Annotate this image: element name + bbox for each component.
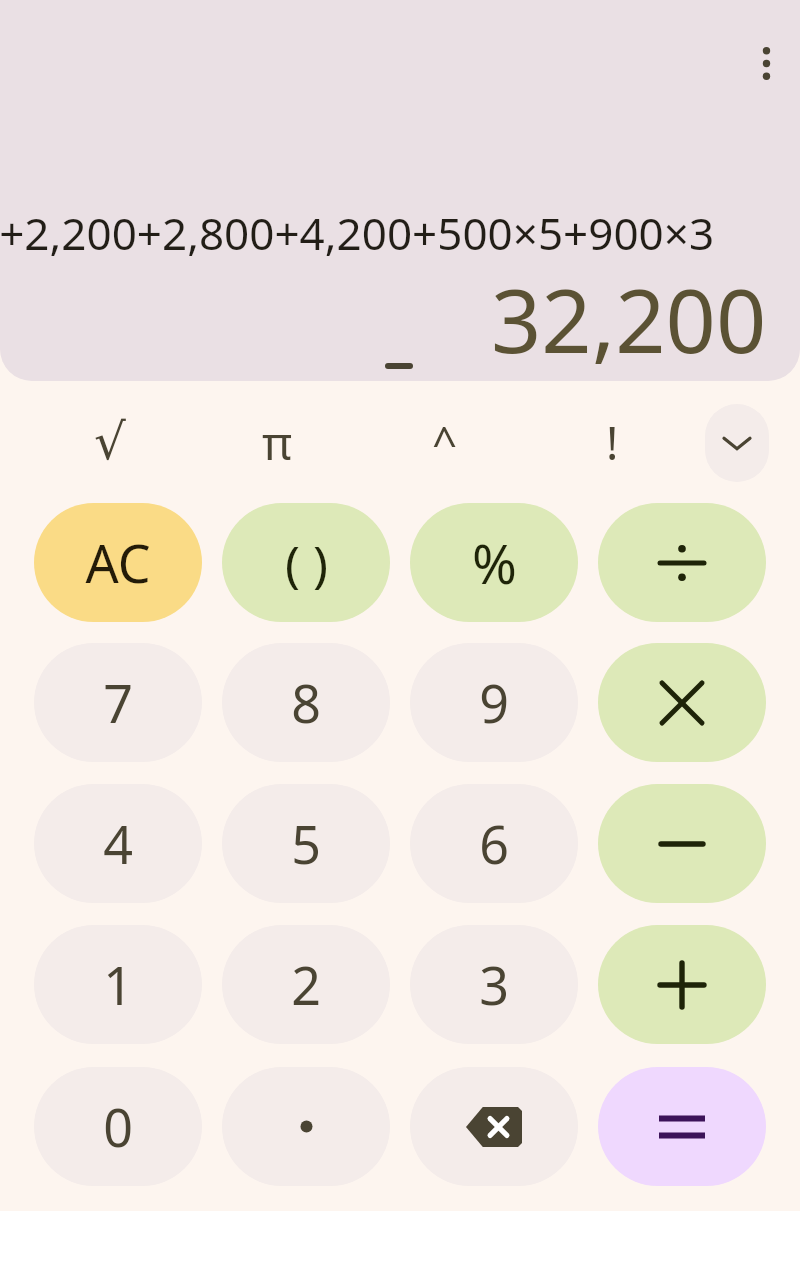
staticText: 4 xyxy=(103,808,133,879)
button[interactable]: 3 xyxy=(410,925,578,1044)
staticText: 32,200 xyxy=(491,259,767,379)
staticText: 7 xyxy=(103,667,133,738)
button[interactable]: 5 xyxy=(222,784,390,903)
staticText: 1 xyxy=(103,949,133,1020)
staticText: 3 xyxy=(479,949,509,1020)
button[interactable]: 7 xyxy=(34,643,202,762)
button[interactable]: 9 xyxy=(410,643,578,762)
button[interactable]: Divide xyxy=(598,503,766,622)
button[interactable]: Multiply xyxy=(598,643,766,762)
button[interactable]: ( ) xyxy=(222,503,390,622)
staticText: % xyxy=(472,526,517,600)
staticText: ( ) xyxy=(285,529,328,597)
button[interactable]: Equals xyxy=(598,1067,766,1186)
button[interactable]: % xyxy=(410,503,578,622)
button[interactable]: Backspace xyxy=(410,1067,578,1186)
staticText: 6 xyxy=(479,808,509,879)
button[interactable]: Expand history xyxy=(370,354,428,378)
button[interactable]: √ xyxy=(70,398,150,486)
button[interactable]: AC xyxy=(34,503,202,622)
staticText: 0+2,200+2,800+4,200+500×5+900×3 xyxy=(0,203,715,263)
button[interactable]: More options xyxy=(734,30,798,96)
button[interactable]: Decimal point xyxy=(222,1067,390,1186)
staticText: ! xyxy=(606,411,619,474)
button[interactable]: 8 xyxy=(222,643,390,762)
button[interactable]: More functions xyxy=(705,404,769,482)
button[interactable]: Plus xyxy=(598,925,766,1044)
button[interactable]: ^ xyxy=(405,398,485,486)
button[interactable]: 6 xyxy=(410,784,578,903)
button[interactable]: π xyxy=(237,398,317,486)
button[interactable]: 2 xyxy=(222,925,390,1044)
staticText: 2 xyxy=(291,949,321,1020)
button[interactable]: Minus xyxy=(598,784,766,903)
staticText: √ xyxy=(94,413,126,471)
staticText: π xyxy=(262,411,293,474)
staticText: AC xyxy=(85,527,151,598)
staticText: ^ xyxy=(432,412,458,472)
staticText: 9 xyxy=(479,667,509,738)
button[interactable]: ! xyxy=(572,398,652,486)
button[interactable]: 1 xyxy=(34,925,202,1044)
staticText: 8 xyxy=(291,667,321,738)
button[interactable]: 0 xyxy=(34,1067,202,1186)
staticText: 0 xyxy=(103,1091,133,1162)
button[interactable]: 4 xyxy=(34,784,202,903)
staticText: 5 xyxy=(291,808,321,879)
